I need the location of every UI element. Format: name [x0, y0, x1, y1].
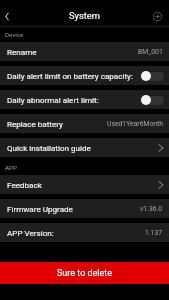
- staticText: BM_001: [138, 48, 163, 56]
- staticText: System: [69, 10, 100, 21]
- staticText: Replace battery: [7, 119, 63, 128]
- button[interactable]: Toggle: [140, 71, 164, 81]
- staticText: Quick installation guide: [7, 143, 91, 152]
- staticText: 1.137: [145, 229, 163, 237]
- staticText: Firmware Upgrade: [7, 204, 73, 213]
- button[interactable]: Daily abnormal alert limit:: [0, 90, 169, 109]
- button[interactable]: Back: [0, 9, 14, 23]
- staticText: Daily abnormal alert limit:: [7, 95, 99, 104]
- staticText: Feedback: [7, 180, 42, 189]
- button[interactable]: Toggle: [140, 95, 164, 105]
- staticText: APP: [5, 164, 17, 171]
- staticText: Used1Year6Month: [107, 120, 163, 128]
- staticText: Sure to delete: [57, 268, 113, 279]
- button[interactable]: Quick installation guide: [0, 138, 169, 157]
- button[interactable]: Feedback: [0, 175, 169, 194]
- button[interactable]: Add device: [150, 9, 164, 23]
- button[interactable]: Replace battery: [0, 114, 169, 133]
- button[interactable]: Sure to delete: [0, 262, 169, 284]
- staticText: APP Version:: [7, 228, 54, 237]
- button[interactable]: Daily alert limit on battery capacity:: [0, 66, 169, 85]
- staticText: v1.36.0: [140, 205, 163, 213]
- button[interactable]: APP Version:: [0, 223, 169, 242]
- staticText: Daily alert limit on battery capacity:: [7, 71, 133, 80]
- staticText: Device: [5, 31, 24, 38]
- staticText: Rename: [7, 47, 37, 56]
- button[interactable]: Firmware Upgrade: [0, 199, 169, 218]
- button[interactable]: Rename: [0, 42, 169, 61]
